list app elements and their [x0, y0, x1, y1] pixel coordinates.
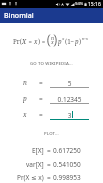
button[interactable]: x: [0, 104, 103, 120]
staticText: X: [22, 37, 27, 45]
staticText: n: [23, 78, 27, 87]
button[interactable]: PLOT...: [0, 126, 103, 140]
staticText: var[X]: [26, 160, 44, 169]
staticText: x: [34, 37, 38, 45]
staticText: n−x: [82, 36, 89, 42]
staticText: 0.617250: [53, 146, 81, 155]
staticText: 0.541050: [53, 160, 81, 169]
staticText: p: [58, 37, 62, 45]
staticText: 5: [50, 79, 89, 88]
staticText: 94%: [75, 1, 84, 7]
staticText: PLOT...: [44, 130, 59, 136]
staticText: x: [62, 36, 65, 42]
staticText: Pr(X ≤ x): [17, 173, 44, 182]
button[interactable]: n: [0, 72, 103, 88]
staticText: x: [51, 39, 54, 46]
staticText: n: [51, 35, 54, 42]
staticText: 0.998953: [53, 173, 81, 182]
staticText: =: [39, 78, 43, 87]
staticText: ) =: [38, 37, 47, 45]
staticText: p: [75, 37, 79, 45]
staticText: =: [47, 173, 51, 182]
staticText: GO TO WIKIPEDIA...: [30, 60, 73, 66]
staticText: E[X]: [32, 146, 44, 155]
staticText: ): [79, 37, 82, 45]
staticText: p: [23, 94, 27, 103]
staticText: =: [27, 37, 34, 45]
staticText: =: [39, 110, 43, 119]
button[interactable]: p: [0, 88, 103, 104]
staticText: =: [47, 146, 51, 155]
staticText: =: [39, 94, 43, 103]
button[interactable]: GO TO WIKIPEDIA...: [0, 56, 103, 70]
staticText: Pr(: [13, 37, 22, 45]
staticText: (1−: [65, 37, 75, 45]
staticText: 15:16: [88, 1, 101, 8]
staticText: =: [47, 160, 51, 169]
staticText: 0.12345: [50, 95, 89, 104]
staticText: x: [23, 110, 27, 119]
staticText: 3: [50, 111, 89, 120]
staticText: Binomial: [4, 11, 34, 21]
